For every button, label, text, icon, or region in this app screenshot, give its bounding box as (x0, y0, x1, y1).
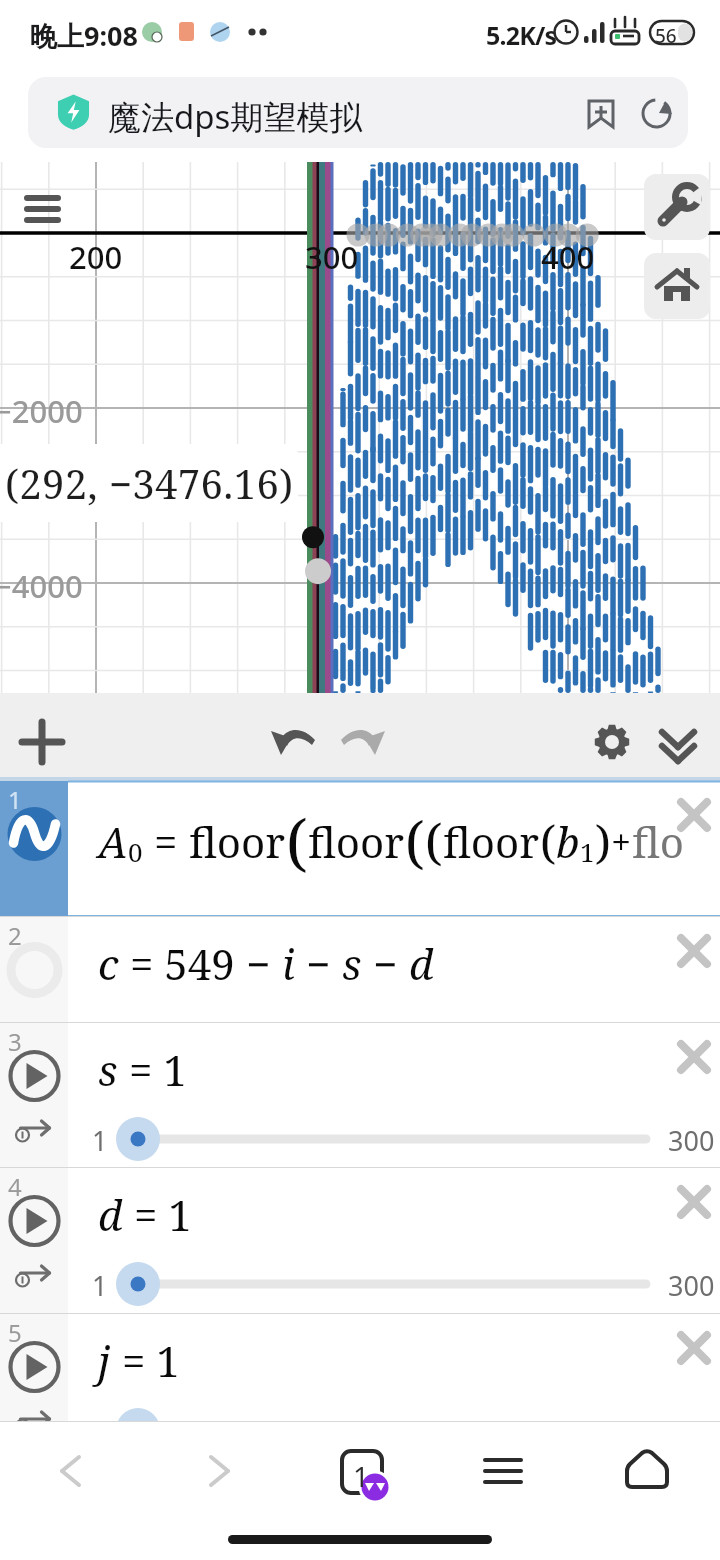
staticText: ( (286, 799, 308, 883)
staticText: j (98, 1332, 111, 1389)
staticText: 300 (305, 236, 359, 278)
staticText: 56 (655, 23, 677, 49)
button[interactable]: Delete expression (666, 1029, 720, 1085)
staticText: 1 (8, 783, 22, 816)
button[interactable]: Delete expression (666, 1320, 720, 1376)
button[interactable]: 3 (0, 1023, 720, 1168)
button[interactable]: Forward (179, 1431, 259, 1511)
staticText: 4 (8, 1170, 22, 1203)
button[interactable]: 魔法dps期望模拟 (28, 77, 688, 148)
staticText: d (98, 1186, 123, 1243)
staticText: = 1 (123, 1186, 192, 1243)
button[interactable]: Tabs (320, 1431, 400, 1511)
button[interactable]: Graph settings (644, 174, 710, 240)
staticText: = 1 (111, 1332, 180, 1389)
button[interactable]: Undo (262, 710, 326, 774)
staticText: floor (308, 813, 405, 870)
staticText: s (98, 1041, 118, 1098)
staticText: 5.2K/s (486, 18, 557, 52)
staticText: 1 (92, 1122, 108, 1159)
staticText: A (98, 813, 128, 870)
staticText: 300 (668, 1413, 715, 1450)
staticText: = (143, 813, 189, 870)
staticText: c (98, 935, 119, 992)
staticText: 1 (92, 1413, 108, 1450)
staticText: floor (443, 813, 540, 870)
button[interactable]: 4 (0, 1168, 720, 1314)
staticText: flo (632, 813, 685, 870)
button[interactable]: Slider (86, 1406, 720, 1454)
staticText: s (342, 935, 373, 992)
staticText: i (282, 935, 306, 992)
staticText: 魔法dps期望模拟 (108, 94, 363, 139)
button[interactable]: 1 (0, 781, 720, 917)
button[interactable]: Home (607, 1431, 687, 1511)
button[interactable]: Delete expression (666, 1174, 720, 1230)
button[interactable]: Delete expression (666, 923, 720, 979)
button[interactable]: Add bookmark (576, 88, 626, 138)
staticText: 3 (8, 1025, 22, 1058)
button[interactable]: Collapse (646, 710, 710, 774)
staticText: + (611, 817, 632, 866)
staticText: 1 (353, 1457, 370, 1495)
staticText: −4000 (0, 565, 83, 607)
staticText: − (373, 935, 409, 992)
staticText: 0 (128, 834, 143, 869)
button[interactable]: Slider (86, 1115, 720, 1163)
staticText: 1 (92, 1267, 108, 1304)
staticText: (292, −3476.16) (5, 456, 294, 510)
button[interactable]: Redo (330, 710, 394, 774)
button[interactable]: Back (31, 1431, 111, 1511)
staticText: b (556, 813, 580, 870)
button[interactable]: Menu (463, 1431, 543, 1511)
button[interactable]: 5 (0, 1314, 720, 1422)
staticText: 400 (541, 236, 595, 278)
staticText: − (246, 935, 282, 992)
button[interactable]: Reset view (644, 253, 710, 319)
staticText: 晚上9:08 (30, 17, 138, 54)
staticText: 2 (8, 919, 22, 952)
staticText: 300 (668, 1122, 715, 1159)
button[interactable]: 2 (0, 917, 720, 1023)
button[interactable]: Settings (580, 710, 644, 774)
button[interactable]: Add expression (10, 710, 74, 774)
staticText: 300 (668, 1267, 715, 1304)
staticText: ( (425, 807, 443, 875)
staticText: 1 (580, 834, 595, 869)
staticText: −2000 (0, 390, 83, 432)
staticText: ( (405, 803, 425, 879)
staticText: d (409, 935, 434, 992)
staticText: 200 (69, 236, 123, 278)
staticText: − (306, 935, 342, 992)
staticText: ) (595, 810, 611, 873)
staticText: = 549 (119, 935, 246, 992)
staticText: 5 (8, 1316, 22, 1349)
staticText: floor (189, 813, 286, 870)
button[interactable]: Slider (86, 1260, 720, 1308)
button[interactable]: Delete expression (666, 787, 720, 843)
staticText: = 1 (118, 1041, 187, 1098)
button[interactable]: Graph menu (18, 187, 68, 237)
staticText: ( (540, 810, 556, 873)
button[interactable]: Refresh (631, 88, 681, 138)
